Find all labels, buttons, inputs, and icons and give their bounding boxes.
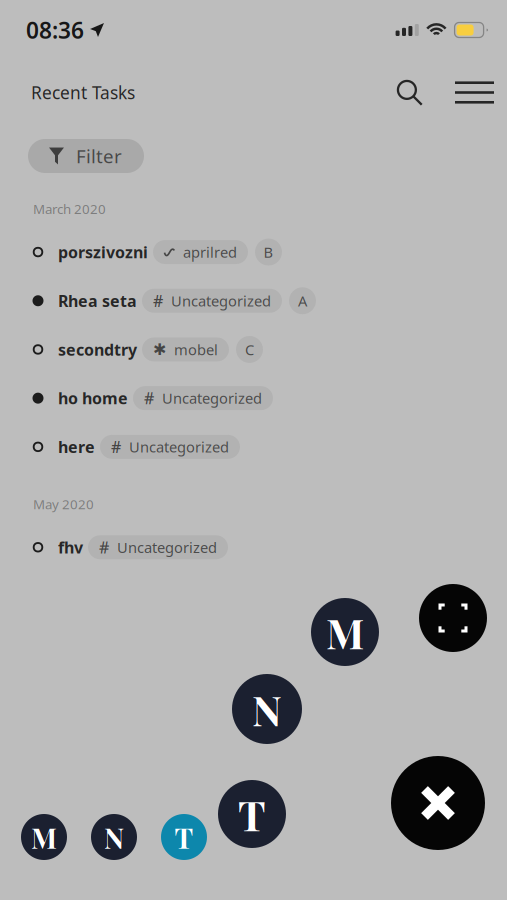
staticText: # [111, 436, 121, 457]
button[interactable]: Add N item [91, 814, 137, 860]
staticText: Filter [76, 144, 122, 168]
button[interactable]: secondtry [0, 325, 507, 374]
staticText: May 2020 [33, 495, 94, 513]
button[interactable]: Add M item [311, 598, 379, 666]
staticText: secondtry [58, 339, 137, 360]
staticText: M [326, 604, 364, 660]
staticText: A [298, 291, 307, 310]
staticText: ✱ [153, 340, 166, 359]
staticText: C [245, 340, 254, 359]
staticText: aprilred [183, 242, 237, 262]
staticText: N [104, 818, 124, 856]
staticText: Uncategorized [129, 437, 229, 457]
button[interactable]: here [0, 422, 507, 471]
button[interactable]: Rhea seta [0, 276, 507, 325]
button[interactable]: porszivozni [0, 228, 507, 276]
staticText: # [99, 537, 109, 558]
staticText: N [252, 681, 282, 737]
button[interactable]: Add M item [21, 814, 67, 860]
staticText: B [263, 242, 273, 262]
button[interactable]: Close menu [391, 756, 485, 850]
staticText: ho home [58, 387, 128, 409]
staticText: T [238, 786, 266, 842]
staticText: M [31, 818, 57, 856]
staticText: Uncategorized [117, 537, 217, 557]
staticText: Uncategorized [171, 291, 271, 310]
staticText: Recent Tasks [31, 81, 135, 104]
button[interactable]: Scan [419, 584, 487, 652]
button[interactable]: Filter [28, 139, 144, 173]
staticText: Rhea seta [58, 290, 137, 311]
staticText: T [174, 818, 193, 856]
button[interactable]: Search [373, 69, 446, 115]
button[interactable]: fhv [0, 523, 507, 572]
button[interactable]: Add T item [218, 780, 286, 848]
button[interactable]: ho home [0, 374, 507, 422]
staticText: March 2020 [33, 200, 106, 218]
staticText: mobel [174, 340, 218, 359]
staticText: 08:36 [26, 15, 84, 45]
button[interactable]: Menu [446, 69, 503, 115]
staticText: # [144, 387, 154, 409]
staticText: Uncategorized [162, 388, 262, 408]
button[interactable]: Add N item [232, 674, 302, 744]
staticText: fhv [58, 537, 83, 558]
button[interactable]: Add T item [161, 814, 207, 860]
staticText: porszivozni [58, 241, 148, 263]
staticText: here [58, 436, 95, 457]
staticText: # [153, 290, 163, 311]
